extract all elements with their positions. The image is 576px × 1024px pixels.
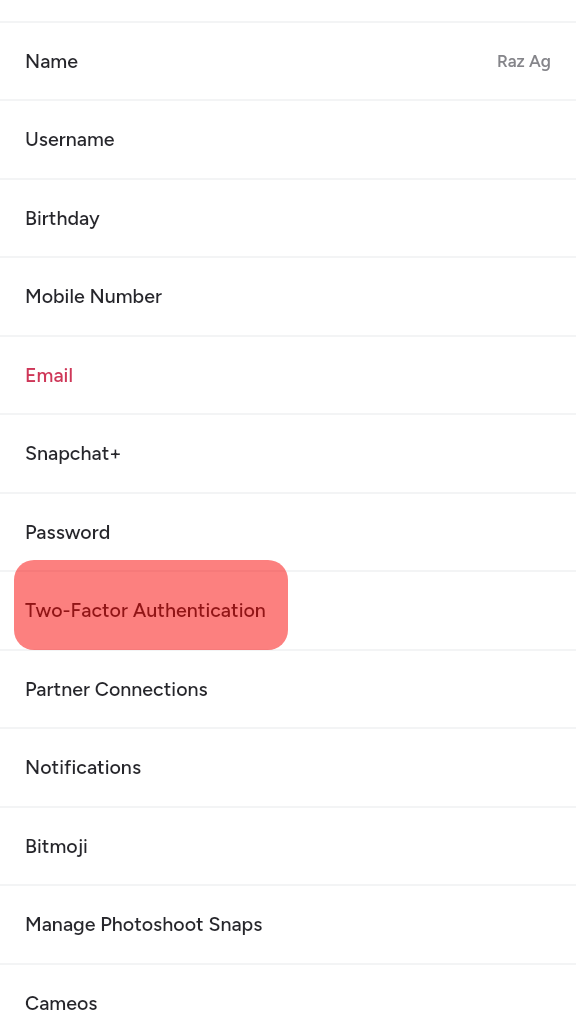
button[interactable]: Username <box>0 99 576 178</box>
button[interactable]: Snapchat+ <box>0 413 576 492</box>
button[interactable]: Password <box>0 492 576 571</box>
button[interactable]: Two-Factor Authentication <box>0 570 576 649</box>
staticText: Notifications <box>25 755 142 779</box>
button[interactable]: Bitmoji <box>0 806 576 885</box>
button[interactable]: Cameos <box>0 963 576 1024</box>
staticText: Cameos <box>25 991 98 1015</box>
staticText: Partner Connections <box>25 677 208 701</box>
staticText: Password <box>25 520 111 544</box>
button[interactable]: Birthday <box>0 178 576 257</box>
staticText: Two-Factor Authentication <box>25 598 266 622</box>
button[interactable]: Partner Connections <box>0 649 576 728</box>
staticText: Snapchat+ <box>25 441 122 465</box>
staticText: Username <box>25 127 115 151</box>
staticText: Email <box>25 363 73 387</box>
button[interactable]: Notifications <box>0 727 576 806</box>
staticText: Bitmoji <box>25 834 88 858</box>
button[interactable]: Mobile Number <box>0 256 576 335</box>
button[interactable]: Manage Photoshoot Snaps <box>0 884 576 963</box>
staticText: Birthday <box>25 206 100 230</box>
staticText: Name <box>25 49 79 73</box>
staticText: Mobile Number <box>25 284 162 308</box>
button[interactable]: Name <box>0 21 576 100</box>
button[interactable]: Email <box>0 335 576 414</box>
staticText: Manage Photoshoot Snaps <box>25 912 263 936</box>
staticText: Raz Ag <box>497 51 551 71</box>
